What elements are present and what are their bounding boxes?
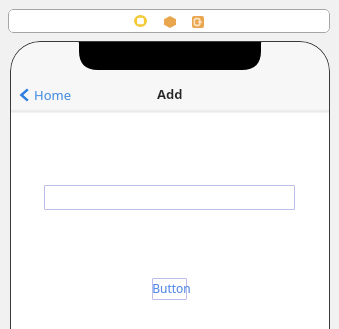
button[interactable]: Record — [133, 14, 148, 28]
button[interactable]: Open in new window — [191, 15, 205, 28]
button[interactable]: Home — [20, 86, 71, 104]
button[interactable]: Components — [163, 15, 176, 28]
staticText: Button — [152, 280, 191, 296]
staticText: Add — [157, 85, 183, 103]
button[interactable] — [152, 278, 187, 300]
button[interactable] — [44, 185, 295, 210]
staticText: Home — [34, 86, 71, 104]
